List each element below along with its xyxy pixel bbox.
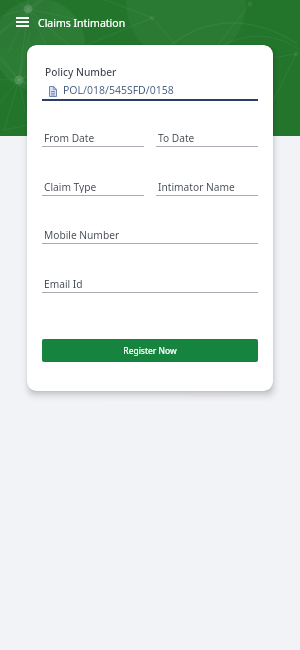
button[interactable]: Email Id (42, 280, 258, 293)
button[interactable]: Mobile Number (42, 231, 258, 244)
staticText: Register Now (123, 345, 177, 357)
staticText: Claims Intimation (38, 16, 126, 28)
button[interactable]: To Date (156, 134, 258, 147)
staticText: POL/018/545SFD/0158 (63, 83, 174, 97)
staticText: Mobile Number (44, 228, 120, 241)
button[interactable]: From Date (42, 134, 144, 147)
staticText: From Date (44, 131, 95, 144)
button[interactable]: Policy Number (42, 62, 258, 101)
button[interactable]: Claim Type (42, 183, 144, 196)
staticText: Email Id (44, 277, 83, 290)
staticText: Claim Type (44, 180, 97, 193)
staticText: Intimator Name (158, 180, 235, 193)
button[interactable]: Open navigation menu (16, 16, 29, 28)
staticText: To Date (158, 131, 195, 144)
button[interactable]: Intimator Name (156, 183, 258, 196)
button[interactable]: Register Now (42, 339, 258, 362)
staticText: Policy Number (45, 65, 117, 79)
